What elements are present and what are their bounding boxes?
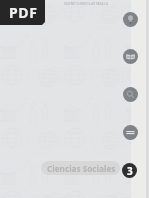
button[interactable]: Book <box>123 49 138 64</box>
button[interactable]: Search <box>123 87 138 102</box>
button[interactable]: Ideas <box>123 12 138 27</box>
staticText: Ciencias Sociales <box>47 163 116 174</box>
button[interactable]: Menu <box>123 125 138 140</box>
staticText: DISEÑO CURRICULAR PARA LA <box>64 2 108 6</box>
staticText: 3 <box>127 164 133 178</box>
button[interactable]: PDF <box>0 0 45 25</box>
staticText: PDF <box>9 3 38 22</box>
button[interactable]: Ciencias Sociales <box>47 161 116 175</box>
